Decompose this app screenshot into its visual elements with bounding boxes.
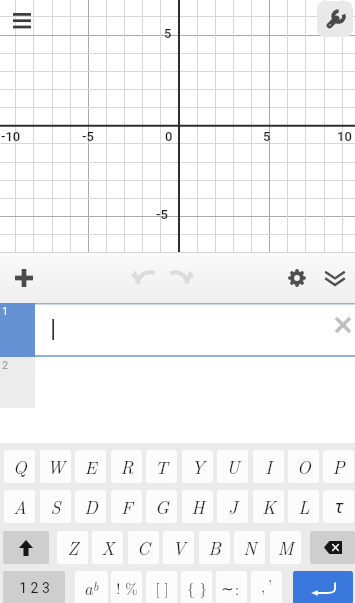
staticText: H bbox=[191, 494, 205, 519]
staticText: W bbox=[47, 454, 65, 479]
staticText: ! % bbox=[116, 577, 138, 598]
staticText: ∼ bbox=[221, 580, 234, 597]
staticText: V bbox=[172, 535, 186, 560]
button[interactable]: T bbox=[146, 450, 177, 483]
staticText: b bbox=[93, 577, 99, 594]
button[interactable]: E bbox=[75, 450, 106, 483]
staticText: L bbox=[298, 494, 310, 519]
button[interactable]: τ bbox=[323, 490, 354, 523]
staticText: A bbox=[13, 494, 27, 519]
button[interactable]: Open menu bbox=[7, 5, 37, 35]
button[interactable]: Shift bbox=[3, 531, 49, 564]
button[interactable]: P bbox=[323, 450, 354, 483]
button[interactable]: D bbox=[75, 490, 106, 523]
button[interactable]: ! % bbox=[111, 571, 142, 603]
button[interactable]: Y bbox=[182, 450, 213, 483]
staticText: a bbox=[84, 576, 93, 600]
staticText: T bbox=[155, 454, 168, 479]
staticText: 5 bbox=[164, 26, 172, 41]
button[interactable]: R bbox=[111, 450, 142, 483]
button[interactable] bbox=[35, 303, 355, 357]
staticText: M bbox=[277, 535, 294, 560]
button[interactable]: Redo bbox=[164, 261, 199, 294]
button[interactable]: H bbox=[182, 490, 213, 523]
button[interactable]: F bbox=[111, 490, 142, 523]
staticText: 2 bbox=[2, 359, 9, 372]
button[interactable]: a bbox=[75, 571, 108, 603]
button[interactable]: L bbox=[288, 490, 319, 523]
button[interactable]: Add expression bbox=[6, 261, 41, 294]
staticText: U bbox=[226, 454, 240, 479]
staticText: 5 bbox=[263, 129, 271, 144]
staticText: 10 bbox=[337, 129, 352, 144]
button[interactable]: J bbox=[217, 490, 248, 523]
staticText: ’ bbox=[268, 574, 273, 595]
button[interactable]: Z bbox=[57, 531, 88, 564]
button[interactable]: A bbox=[4, 490, 35, 523]
button[interactable]: 1 bbox=[0, 303, 35, 357]
button[interactable]: Collapse keyboard bbox=[317, 261, 352, 294]
staticText: C bbox=[137, 535, 150, 560]
staticText: P bbox=[332, 454, 345, 479]
button[interactable]: { } bbox=[181, 571, 212, 603]
button[interactable]: Graph settings bbox=[317, 1, 353, 37]
staticText: I bbox=[265, 454, 272, 479]
staticText: E bbox=[84, 454, 97, 479]
staticText: [ ] bbox=[155, 577, 169, 598]
staticText: Z bbox=[67, 535, 79, 560]
staticText: Q bbox=[13, 454, 27, 479]
button[interactable]: 2 bbox=[0, 357, 35, 408]
staticText: D bbox=[84, 494, 98, 519]
button[interactable]: , bbox=[251, 571, 282, 603]
staticText: -5 bbox=[82, 129, 94, 144]
button[interactable]: ∼ bbox=[216, 571, 247, 603]
button[interactable]: N bbox=[234, 531, 265, 564]
staticText: 1 2 3 bbox=[19, 580, 50, 596]
button[interactable]: X bbox=[92, 531, 123, 564]
button[interactable]: Enter bbox=[293, 571, 353, 603]
button[interactable]: W bbox=[40, 450, 71, 483]
button[interactable]: Delete expression bbox=[331, 313, 355, 337]
staticText: X bbox=[101, 535, 115, 560]
button[interactable]: K bbox=[253, 490, 284, 523]
staticText: S bbox=[50, 494, 61, 519]
button[interactable]: Undo bbox=[125, 261, 160, 294]
button[interactable]: Settings bbox=[279, 261, 314, 294]
button[interactable]: S bbox=[40, 490, 71, 523]
button[interactable]: I bbox=[253, 450, 284, 483]
button[interactable]: [ ] bbox=[146, 571, 177, 603]
button[interactable]: V bbox=[163, 531, 194, 564]
staticText: Y bbox=[191, 454, 205, 479]
staticText: J bbox=[228, 494, 238, 519]
button[interactable]: U bbox=[217, 450, 248, 483]
button[interactable]: G bbox=[146, 490, 177, 523]
button[interactable]: C bbox=[128, 531, 159, 564]
staticText: τ bbox=[335, 494, 343, 519]
staticText: R bbox=[120, 454, 134, 479]
button[interactable]: Q bbox=[4, 450, 35, 483]
staticText: { } bbox=[187, 577, 207, 598]
staticText: -5 bbox=[156, 207, 168, 222]
staticText: -10 bbox=[1, 129, 21, 144]
staticText: 0 bbox=[165, 129, 173, 144]
button[interactable]: Backspace bbox=[310, 531, 355, 564]
button[interactable]: M bbox=[270, 531, 301, 564]
staticText: , bbox=[261, 575, 266, 596]
staticText: B bbox=[208, 535, 221, 560]
staticText: : bbox=[235, 578, 240, 599]
button[interactable]: O bbox=[288, 450, 319, 483]
button[interactable]: B bbox=[199, 531, 230, 564]
button[interactable]: 1 2 3 bbox=[3, 571, 65, 603]
staticText: O bbox=[297, 454, 311, 479]
staticText: K bbox=[262, 494, 276, 519]
staticText: G bbox=[155, 494, 169, 519]
staticText: N bbox=[243, 535, 257, 560]
staticText: F bbox=[121, 494, 133, 519]
staticText: 1 bbox=[2, 305, 9, 318]
